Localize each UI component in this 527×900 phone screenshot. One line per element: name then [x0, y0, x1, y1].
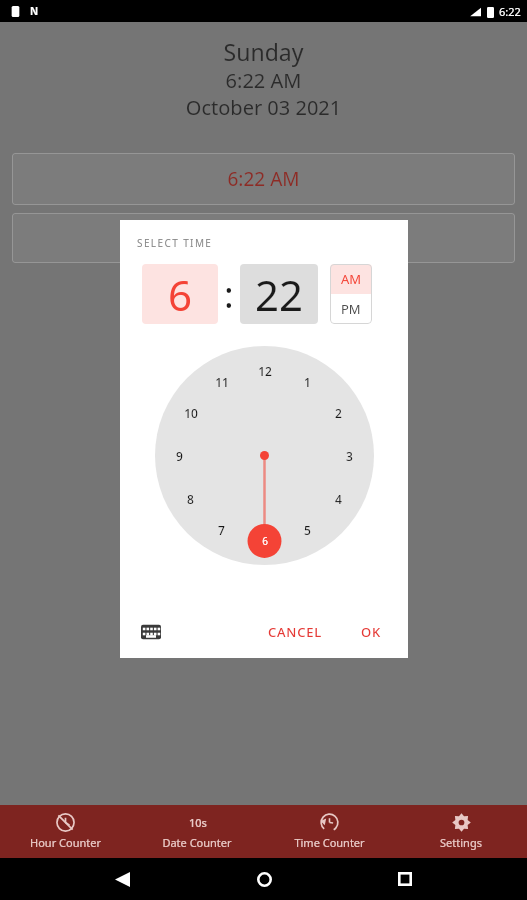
staticText: AM: [341, 270, 362, 288]
button[interactable]: Recent apps: [385, 859, 425, 899]
button[interactable]: 10s: [131, 805, 263, 858]
staticText: Sunday: [0, 36, 527, 67]
button[interactable]: PM: [330, 294, 372, 324]
staticText: 1: [304, 374, 311, 390]
staticText: N: [30, 4, 39, 18]
button[interactable]: 6:22 AM: [12, 153, 515, 205]
button[interactable]: Hour Counter: [0, 805, 131, 858]
staticText: Time Counter: [294, 835, 365, 850]
staticText: 9: [176, 448, 183, 464]
staticText: 6:22 AM: [0, 67, 527, 94]
button[interactable]: OK: [351, 615, 392, 649]
button[interactable]: Back: [102, 859, 142, 899]
button[interactable]: Settings: [395, 805, 527, 858]
staticText: Settings: [440, 835, 482, 850]
staticText: 6:22: [499, 4, 521, 19]
staticText: Date Counter: [162, 835, 232, 850]
staticText: PM: [341, 300, 361, 318]
staticText: 10s: [189, 815, 207, 830]
staticText: 6: [168, 266, 193, 323]
staticText: 3: [346, 448, 353, 464]
staticText: 8: [187, 491, 194, 507]
button[interactable]: 22: [240, 264, 318, 324]
button[interactable]: Switch to text input: [134, 615, 168, 649]
staticText: SELECT TIME: [137, 236, 213, 250]
button[interactable]: Time Counter: [263, 805, 395, 858]
staticText: 22: [255, 266, 304, 323]
staticText: October 03 2021: [0, 94, 527, 121]
button[interactable]: Home: [244, 859, 284, 899]
staticText: 6:22 AM: [227, 166, 300, 192]
staticText: 7: [218, 522, 225, 538]
staticText: 12: [258, 363, 272, 379]
staticText: 4: [335, 491, 342, 507]
staticText: OK: [361, 623, 382, 641]
staticText: 10: [184, 405, 198, 421]
button[interactable]: CANCEL: [258, 615, 333, 649]
staticText: CANCEL: [268, 623, 323, 641]
staticText: Hour Counter: [30, 835, 101, 850]
staticText: 11: [215, 374, 229, 390]
button[interactable]: 6: [142, 264, 218, 324]
staticText: 2: [335, 405, 342, 421]
staticText: 5: [304, 522, 311, 538]
staticText: :: [224, 270, 234, 319]
button[interactable]: [12, 213, 515, 263]
button[interactable]: AM: [330, 264, 372, 294]
staticText: 6: [262, 534, 268, 548]
